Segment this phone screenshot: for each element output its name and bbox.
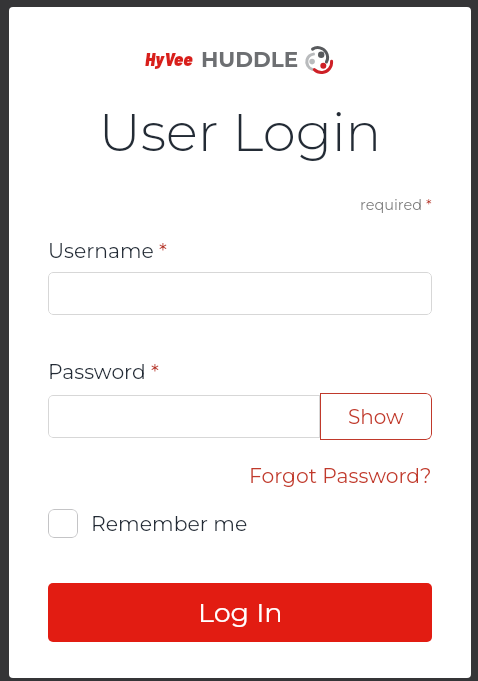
staticText: HUDDLE [201, 46, 299, 72]
staticText: Remember me [91, 511, 248, 536]
button[interactable]: Forgot Password? [249, 463, 432, 488]
staticText: Password * [48, 359, 159, 384]
staticText: User Login [9, 100, 471, 165]
button[interactable] [48, 395, 320, 438]
button[interactable]: Remember me [48, 509, 248, 538]
other: Hy-Vee Huddle logo [306, 45, 336, 74]
staticText: HyVee [145, 47, 193, 70]
button[interactable]: Log In [48, 583, 432, 642]
staticText: required * [360, 196, 432, 214]
button[interactable] [48, 272, 432, 315]
staticText: Forgot Password? [249, 463, 432, 488]
staticText: Log In [198, 596, 283, 629]
staticText: Show [348, 405, 404, 429]
staticText: Username * [48, 238, 167, 263]
button[interactable]: Show [320, 393, 432, 440]
